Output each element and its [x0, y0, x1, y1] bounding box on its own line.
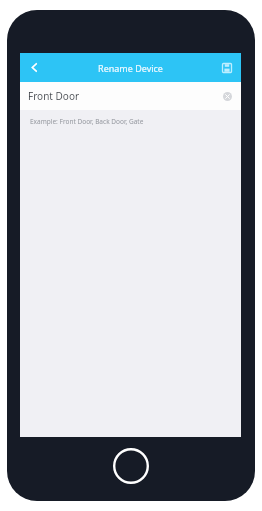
staticText: Front Door	[28, 89, 80, 103]
button[interactable]: Save	[213, 53, 241, 82]
button[interactable]: Front Door	[20, 82, 241, 110]
staticText: Rename Device	[98, 62, 163, 74]
button[interactable]: Home	[111, 446, 151, 486]
button[interactable]: Back	[20, 53, 48, 82]
staticText: Example: Front Door, Back Door, Gate	[30, 117, 144, 126]
button[interactable]: Clear text	[221, 90, 234, 103]
